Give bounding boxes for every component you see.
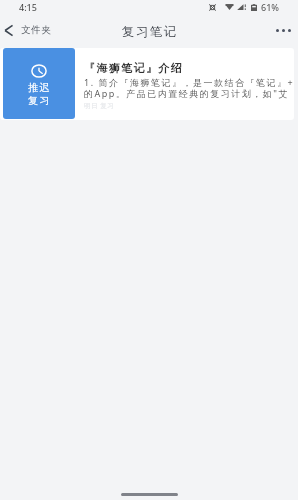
button[interactable]: More options [265,20,298,39]
staticText: 4:15 [19,1,37,13]
staticText: 推迟 [28,81,51,94]
staticText: 文件夹 [21,24,52,36]
staticText: 『海狮笔记』介绍 [84,61,184,75]
staticText: 复习笔记 [121,24,177,40]
button[interactable]: 文件夹 [0,18,60,40]
staticText: 61% [261,1,279,13]
staticText: 明日 复习 [84,101,115,110]
button[interactable]: 推迟 [3,48,75,119]
staticText: 1. 简介『海狮笔记』，是一款结合『笔记』+ 的App。产品已内置经典的复习计划… [84,76,298,99]
staticText: 复习 [28,94,51,107]
